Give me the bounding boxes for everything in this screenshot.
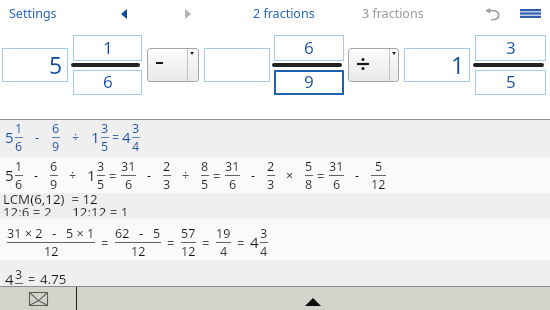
- button[interactable]: 5: [0, 157, 550, 193]
- staticText: ×: [286, 167, 294, 184]
- staticText: 6: [229, 176, 237, 193]
- staticText: =: [112, 129, 120, 146]
- staticText: Settings: [9, 5, 57, 22]
- staticText: 3 fractions: [362, 5, 424, 22]
- button[interactable]: Settings: [4, 0, 62, 27]
- staticText: 3: [132, 120, 140, 137]
- staticText: 6: [125, 176, 133, 193]
- staticText: 9: [52, 138, 60, 155]
- button[interactable]: Menu: [513, 0, 547, 27]
- button[interactable]: 5: [2, 48, 68, 82]
- button[interactable]: [204, 48, 270, 82]
- button[interactable]: Divide operator: [348, 48, 399, 82]
- staticText: 3: [97, 158, 105, 175]
- button[interactable]: Previous: [112, 0, 138, 27]
- staticText: 6: [15, 176, 23, 193]
- button[interactable]: 31 × 2 - 5 × 1: [0, 219, 550, 260]
- staticText: =: [317, 167, 325, 185]
- button[interactable]: Undo: [478, 0, 506, 27]
- staticText: 1: [91, 127, 100, 148]
- staticText: =: [213, 167, 221, 185]
- button[interactable]: 1: [404, 48, 470, 82]
- button[interactable]: Minus operator: [147, 48, 199, 82]
- staticText: 19: [216, 225, 231, 242]
- staticText: 12: [371, 176, 386, 193]
- button[interactable]: 6: [73, 70, 142, 95]
- staticText: 6: [50, 158, 58, 175]
- button[interactable]: 9: [274, 70, 344, 95]
- button[interactable]: 2 fractions: [250, 0, 317, 27]
- staticText: -: [34, 167, 39, 184]
- staticText: 6: [15, 138, 23, 155]
- staticText: -: [355, 167, 360, 184]
- staticText: 1: [15, 120, 23, 137]
- staticText: 5: [506, 70, 516, 93]
- staticText: 3: [15, 266, 23, 283]
- staticText: 2: [267, 158, 275, 175]
- staticText: 4: [220, 243, 228, 260]
- staticText: 4: [260, 243, 268, 260]
- staticText: 31: [121, 158, 136, 175]
- staticText: -: [35, 129, 40, 146]
- staticText: =: [28, 271, 36, 286]
- staticText: 31: [225, 158, 240, 175]
- button[interactable]: LCM(6,12) = 12 12:6 = 2 12:12 = 1: [0, 193, 550, 219]
- button[interactable]: Next: [174, 0, 200, 27]
- button[interactable]: 5: [0, 120, 550, 157]
- staticText: 12: [44, 243, 59, 260]
- button[interactable]: 6: [274, 35, 344, 61]
- staticText: 5: [97, 176, 105, 193]
- staticText: 2 fractions: [253, 5, 315, 22]
- button[interactable]: Mail: [0, 287, 76, 310]
- staticText: 62 - 5: [115, 225, 161, 242]
- staticText: 3: [506, 36, 516, 59]
- staticText: 6: [304, 36, 314, 59]
- staticText: 9: [304, 70, 314, 93]
- staticText: =: [109, 167, 117, 185]
- staticText: 31: [329, 158, 344, 175]
- staticText: 5: [5, 127, 14, 148]
- staticText: ÷: [69, 167, 77, 184]
- staticText: 5: [101, 138, 109, 155]
- button[interactable]: 1: [73, 35, 142, 61]
- staticText: 12: [131, 243, 146, 260]
- staticText: -: [147, 167, 152, 184]
- staticText: 1: [451, 49, 465, 80]
- staticText: =: [167, 234, 175, 252]
- staticText: 3: [163, 176, 171, 193]
- staticText: LCM(6,12) = 12 12:6 = 2 12:12 = 1: [3, 193, 129, 216]
- staticText: ÷: [72, 129, 80, 146]
- button[interactable]: 3: [475, 35, 546, 61]
- staticText: 6: [52, 120, 60, 137]
- staticText: =: [237, 234, 245, 252]
- staticText: 31 × 2 - 5 × 1: [7, 225, 95, 242]
- button[interactable]: 4: [0, 260, 550, 286]
- staticText: 1: [87, 165, 96, 186]
- staticText: ÷: [182, 167, 190, 184]
- staticText: 4: [132, 138, 140, 155]
- button[interactable]: 5: [475, 70, 546, 95]
- staticText: 4: [250, 232, 259, 253]
- staticText: 1: [103, 36, 113, 59]
- staticText: 6: [333, 176, 341, 193]
- staticText: 12: [181, 243, 196, 260]
- staticText: 2: [163, 158, 171, 175]
- staticText: 3: [267, 176, 275, 193]
- staticText: 5: [201, 176, 209, 193]
- staticText: 4: [122, 127, 131, 148]
- staticText: 6: [103, 70, 113, 93]
- staticText: 5: [305, 158, 313, 175]
- staticText: 8: [201, 158, 209, 175]
- staticText: =: [101, 234, 109, 252]
- staticText: 57: [181, 225, 196, 242]
- button[interactable]: 3 fractions: [359, 0, 426, 27]
- staticText: 8: [305, 176, 313, 193]
- staticText: 5: [5, 165, 14, 186]
- staticText: -: [251, 167, 256, 184]
- staticText: 4: [5, 269, 14, 286]
- staticText: 5: [375, 158, 383, 175]
- staticText: 9: [50, 176, 58, 193]
- button[interactable]: Expand: [77, 287, 550, 310]
- staticText: 3: [260, 225, 268, 242]
